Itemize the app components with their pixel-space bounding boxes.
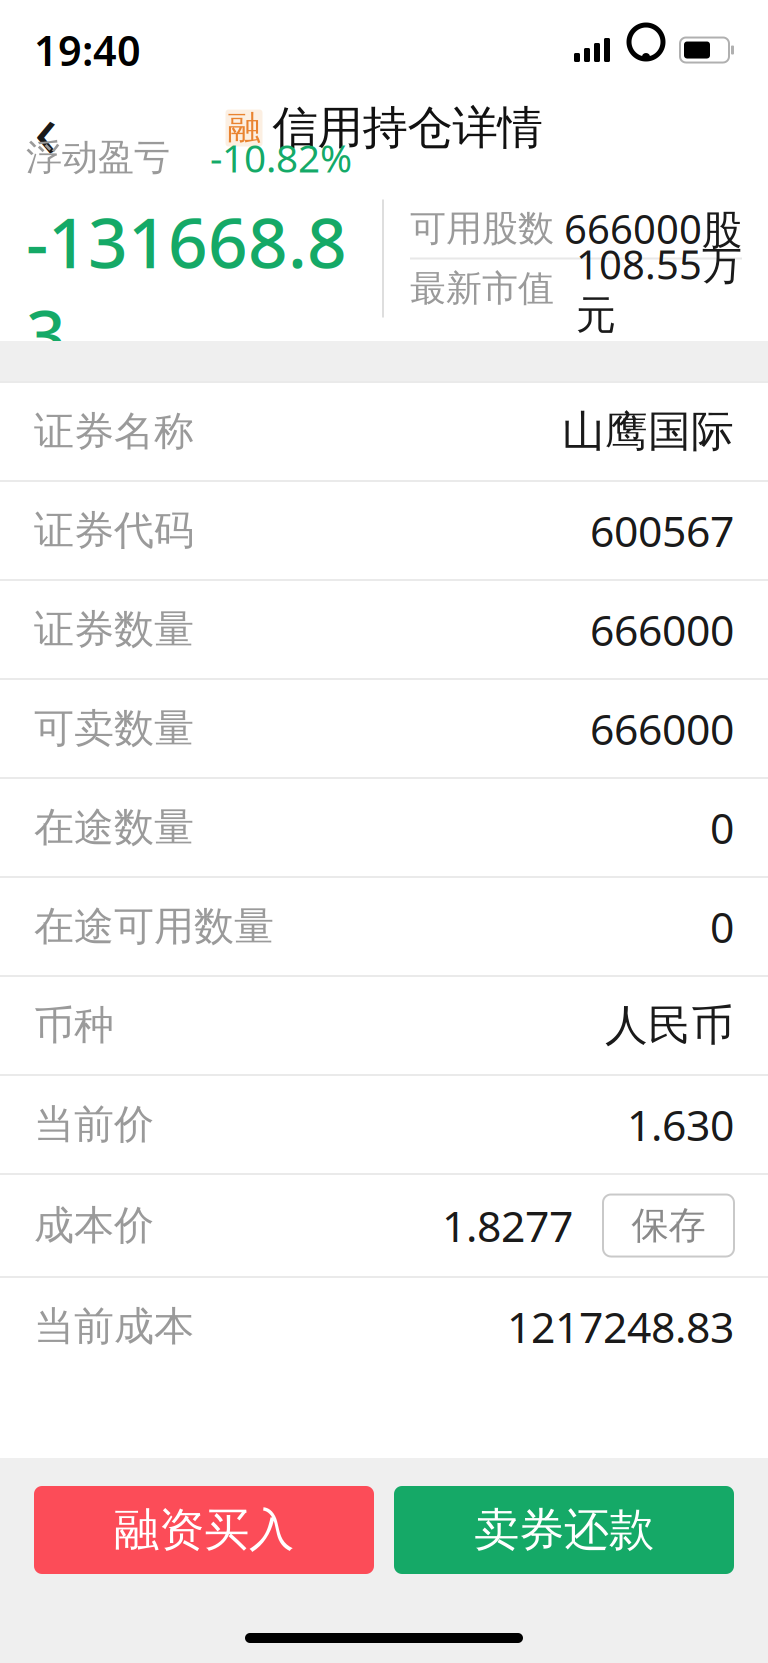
staticText: 1217248.83 <box>507 1298 734 1355</box>
staticText: -10.82% <box>210 132 352 183</box>
staticText: 证券数量 <box>34 605 194 654</box>
staticText: 山鹰国际 <box>562 405 734 458</box>
staticText: 可用股数 <box>410 206 554 251</box>
staticText: 证券代码 <box>34 506 194 555</box>
button[interactable]: 保存 <box>603 1194 734 1256</box>
staticText: 当前价 <box>34 1100 154 1149</box>
button[interactable]: 返回 <box>8 90 84 166</box>
staticText: 666000 <box>590 601 734 658</box>
staticText: ‹ <box>34 77 58 179</box>
staticText: 可卖数量 <box>34 704 194 753</box>
staticText: 666000 <box>590 700 734 757</box>
staticText: 最新市值 <box>410 266 554 311</box>
staticText: 108.55万元 <box>576 237 742 340</box>
staticText: 卖券还款 <box>474 1502 654 1558</box>
staticText: 1.630 <box>627 1096 734 1153</box>
staticText: 当前成本 <box>34 1302 194 1351</box>
staticText: 600567 <box>590 502 734 559</box>
staticText: 0 <box>710 898 734 955</box>
staticText: 人民币 <box>605 999 734 1052</box>
staticText: 19:40 <box>34 23 141 77</box>
staticText: 在途数量 <box>34 803 194 852</box>
staticText: 币种 <box>34 1001 114 1050</box>
staticText: -131668.83 <box>26 195 347 379</box>
staticText: 融资买入 <box>114 1502 294 1558</box>
staticText: 成本价 <box>34 1201 154 1250</box>
staticText: 在途可用数量 <box>34 902 274 951</box>
staticText: 保存 <box>631 1203 705 1248</box>
button[interactable]: 卖券还款 <box>394 1486 734 1574</box>
staticText: 证券名称 <box>34 407 194 456</box>
staticText: 浮动盈亏 <box>26 135 170 179</box>
staticText: 666000股 <box>564 202 742 255</box>
staticText: 1.8277 <box>442 1197 573 1254</box>
staticText: 0 <box>710 799 734 856</box>
staticText: 融 <box>227 107 260 148</box>
button[interactable]: 融资买入 <box>34 1486 374 1574</box>
staticText: 信用持仓详情 <box>272 100 542 156</box>
